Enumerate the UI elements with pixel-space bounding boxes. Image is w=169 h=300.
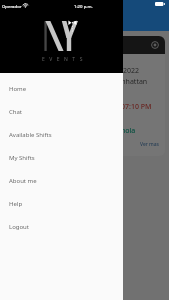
staticText: E V E N T S xyxy=(42,56,84,63)
staticText: 1:20 p.m. xyxy=(74,3,93,9)
staticText: Dec 20, 2022 xyxy=(97,66,139,76)
button[interactable]: Help xyxy=(0,192,123,215)
staticText: Logout xyxy=(9,223,29,231)
staticText: Chat xyxy=(9,108,23,116)
button[interactable]: My Shifts xyxy=(0,146,123,169)
staticText: Operador xyxy=(2,3,22,9)
staticText: My Shifts xyxy=(9,154,35,162)
staticText: hola xyxy=(121,126,136,136)
staticText: Manhattan xyxy=(111,77,148,87)
button[interactable]: More options xyxy=(151,41,159,49)
button[interactable]: Home xyxy=(0,77,123,100)
staticText: 07:10 PM xyxy=(121,102,152,112)
other: Battery xyxy=(155,2,165,6)
button[interactable]: About me xyxy=(0,169,123,192)
button[interactable]: More options xyxy=(92,36,165,156)
button[interactable]: Available Shifts xyxy=(0,123,123,146)
staticText: Available Shifts xyxy=(9,131,52,139)
button[interactable]: Logout xyxy=(0,215,123,238)
button[interactable]: Ver mas xyxy=(140,141,159,148)
staticText: Home xyxy=(9,85,27,93)
staticText: About me xyxy=(9,177,37,185)
button[interactable]: Chat xyxy=(0,100,123,123)
staticText: Help xyxy=(9,200,23,208)
